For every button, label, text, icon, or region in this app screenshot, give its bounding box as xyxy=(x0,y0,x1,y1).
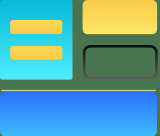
button[interactable]: Outlined card xyxy=(83,45,158,80)
button[interactable]: Yellow card xyxy=(83,0,157,34)
button[interactable]: Blue panel xyxy=(0,91,157,136)
button[interactable]: Cyan card xyxy=(0,0,72,80)
